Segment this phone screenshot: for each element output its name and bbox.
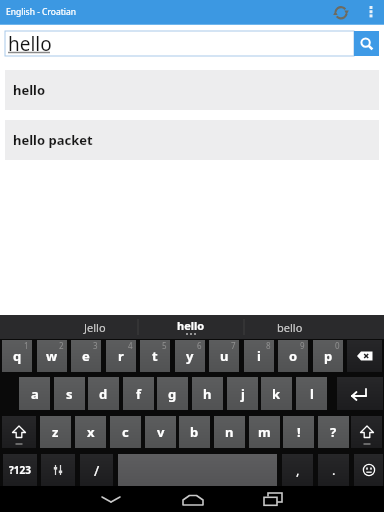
staticText: a (31, 385, 39, 403)
button[interactable]: x (75, 416, 106, 448)
button[interactable]: q (2, 340, 32, 372)
staticText: b (190, 423, 199, 441)
button[interactable]: j (227, 377, 258, 410)
staticText: o (289, 347, 298, 365)
button[interactable]: y (175, 340, 205, 372)
staticText: 5 (162, 340, 167, 351)
button[interactable] (337, 377, 383, 410)
button[interactable]: z (40, 416, 71, 448)
staticText: p (324, 347, 333, 365)
staticText: i (257, 347, 261, 365)
button[interactable] (351, 416, 382, 448)
staticText: bello (277, 320, 303, 335)
staticText: w (46, 347, 58, 365)
staticText: u (220, 347, 229, 365)
button[interactable] (175, 486, 211, 512)
staticText: hello (8, 31, 52, 56)
staticText: ! (297, 423, 301, 441)
button[interactable]: a (19, 377, 50, 410)
button[interactable]: hello (138, 315, 244, 339)
staticText: j (241, 385, 245, 403)
staticText: 7 (231, 340, 236, 351)
staticText: s (66, 385, 73, 403)
button[interactable]: / (80, 454, 113, 486)
button[interactable]: ? (318, 416, 349, 448)
staticText: g (168, 385, 177, 403)
staticText: 2 (59, 340, 64, 351)
button[interactable]: m (249, 416, 280, 448)
button[interactable]: c (110, 416, 141, 448)
button[interactable]: w (37, 340, 67, 372)
staticText: y (186, 347, 194, 365)
staticText: 6 (197, 340, 202, 351)
button[interactable]: h (192, 377, 223, 410)
button[interactable] (347, 340, 382, 372)
button[interactable]: t (140, 340, 170, 372)
button[interactable]: Jello (52, 315, 138, 339)
button[interactable]: l (296, 377, 327, 410)
button[interactable]: d (88, 377, 119, 410)
button[interactable] (255, 486, 291, 512)
button[interactable]: . (318, 454, 349, 486)
button[interactable]: hello (5, 70, 379, 110)
staticText: z (52, 423, 59, 441)
staticText: 1 (24, 340, 29, 351)
button[interactable]: bello (244, 315, 336, 339)
button[interactable]: f (123, 377, 154, 410)
button[interactable] (118, 454, 277, 486)
staticText: t (152, 347, 158, 365)
staticText: 4 (128, 340, 133, 351)
staticText: l (310, 385, 314, 403)
button[interactable]: s (54, 377, 85, 410)
button[interactable]: p (313, 340, 343, 372)
button[interactable]: u (209, 340, 239, 372)
staticText: q (13, 347, 22, 365)
button[interactable] (354, 31, 379, 56)
staticText: m (258, 423, 271, 441)
staticText: n (225, 423, 234, 441)
staticText: c (122, 423, 129, 441)
button[interactable]: , (282, 454, 313, 486)
staticText: v (157, 423, 165, 441)
staticText: h (203, 385, 212, 403)
button[interactable] (354, 454, 383, 486)
button[interactable]: i (244, 340, 274, 372)
staticText: ?123 (9, 463, 31, 477)
staticText: x (87, 423, 95, 441)
staticText: d (99, 385, 108, 403)
button[interactable] (330, 2, 352, 24)
staticText: e (82, 347, 90, 365)
staticText: / (94, 461, 100, 480)
staticText: hello (177, 318, 205, 333)
staticText: . (332, 461, 336, 479)
staticText: 9 (300, 340, 305, 351)
staticText: hello (13, 81, 46, 99)
button[interactable] (93, 486, 129, 512)
button[interactable]: hello (5, 31, 354, 56)
button[interactable] (2, 416, 36, 448)
staticText: English - Croatian (6, 6, 76, 18)
button[interactable]: b (179, 416, 210, 448)
staticText: r (118, 347, 124, 365)
staticText: f (136, 385, 142, 403)
staticText: Jello (84, 320, 106, 335)
button[interactable]: g (157, 377, 188, 410)
button[interactable]: ?123 (3, 454, 37, 486)
staticText: 0 (335, 340, 340, 351)
button[interactable]: o (278, 340, 308, 372)
button[interactable]: e (71, 340, 101, 372)
button[interactable]: r (106, 340, 136, 372)
button[interactable] (41, 454, 75, 486)
staticText: 8 (266, 340, 271, 351)
staticText: k (272, 385, 281, 403)
button[interactable]: hello packet (5, 120, 379, 160)
button[interactable]: n (214, 416, 245, 448)
button[interactable] (363, 0, 379, 25)
button[interactable]: ! (283, 416, 314, 448)
button[interactable]: v (145, 416, 176, 448)
staticText: 3 (93, 340, 98, 351)
staticText: hello packet (13, 131, 93, 149)
button[interactable]: k (261, 377, 292, 410)
staticText: , (296, 461, 300, 479)
staticText: ? (330, 423, 337, 441)
